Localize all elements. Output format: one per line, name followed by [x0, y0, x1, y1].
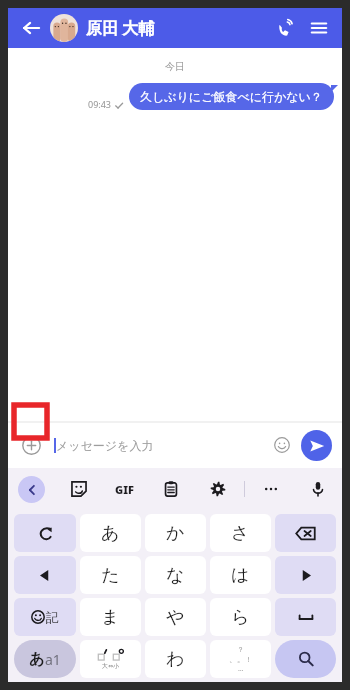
staticText: ら — [231, 606, 250, 629]
staticText: … — [238, 664, 244, 674]
staticText: a1 — [45, 650, 61, 669]
button[interactable]: な — [145, 556, 206, 594]
staticText: GIF — [115, 482, 134, 497]
staticText: は — [231, 564, 250, 587]
button[interactable]: わ — [145, 640, 206, 678]
staticText: 09:43 — [88, 98, 112, 110]
button[interactable]: た — [80, 556, 141, 594]
button[interactable]: 久しぶりにご飯食べに行かない？ — [129, 83, 334, 110]
staticText: 。 — [237, 654, 245, 664]
staticText: ま — [101, 606, 120, 629]
button[interactable]: RIGHT — [275, 556, 336, 594]
staticText: メッセージを入力 — [56, 438, 154, 453]
button[interactable]: あ — [80, 514, 141, 552]
button[interactable]: GIF — [113, 480, 136, 499]
staticText: さ — [231, 522, 250, 545]
button[interactable]: は — [210, 556, 271, 594]
button[interactable]: か — [145, 514, 206, 552]
button[interactable]: Expand toolbar — [18, 476, 45, 503]
button[interactable]: ら — [210, 598, 271, 636]
staticText: や — [166, 606, 185, 629]
button[interactable]: Attach — [18, 432, 44, 458]
staticText: あ — [101, 522, 120, 545]
button[interactable]: Send — [301, 430, 332, 461]
staticText: 原田 大輔 — [86, 17, 155, 39]
button[interactable]: Menu — [302, 11, 336, 45]
button[interactable]: DAKUTEN — [80, 640, 141, 678]
button[interactable]: EMOJI_KIGO — [14, 598, 76, 636]
button[interactable]: や — [145, 598, 206, 636]
button[interactable]: PUNCT — [210, 640, 271, 678]
button[interactable]: Call — [268, 11, 302, 45]
staticText: ？ — [237, 645, 244, 654]
staticText: わ — [166, 648, 185, 671]
button[interactable]: さ — [210, 514, 271, 552]
staticText: 今日 — [8, 60, 342, 73]
button[interactable]: Settings — [206, 477, 230, 501]
button[interactable]: Voice input — [306, 477, 330, 501]
button[interactable]: Emoji — [269, 432, 295, 458]
staticText: 記 — [46, 609, 59, 625]
button[interactable]: Back — [16, 13, 46, 43]
button[interactable]: ま — [80, 598, 141, 636]
button[interactable]: SPACE — [275, 598, 336, 636]
staticText: た — [101, 564, 120, 587]
button[interactable]: Clipboard — [159, 477, 183, 501]
button[interactable]: BACKSPACE — [275, 514, 336, 552]
staticText: あ — [29, 650, 45, 669]
button[interactable]: More options — [259, 477, 283, 501]
button[interactable]: Stickers — [67, 477, 91, 501]
staticText: 大⇔小 — [102, 662, 120, 670]
staticText: 久しぶりにご飯食べに行かない？ — [140, 89, 323, 104]
staticText: ！ — [245, 655, 252, 664]
staticText: 、 — [229, 654, 237, 664]
staticText: か — [166, 522, 185, 545]
button[interactable]: LEFT — [14, 556, 76, 594]
staticText: な — [166, 564, 185, 587]
button[interactable]: MODE — [14, 640, 76, 678]
button[interactable]: SEARCH — [275, 640, 336, 678]
button[interactable]: UNDO — [14, 514, 76, 552]
